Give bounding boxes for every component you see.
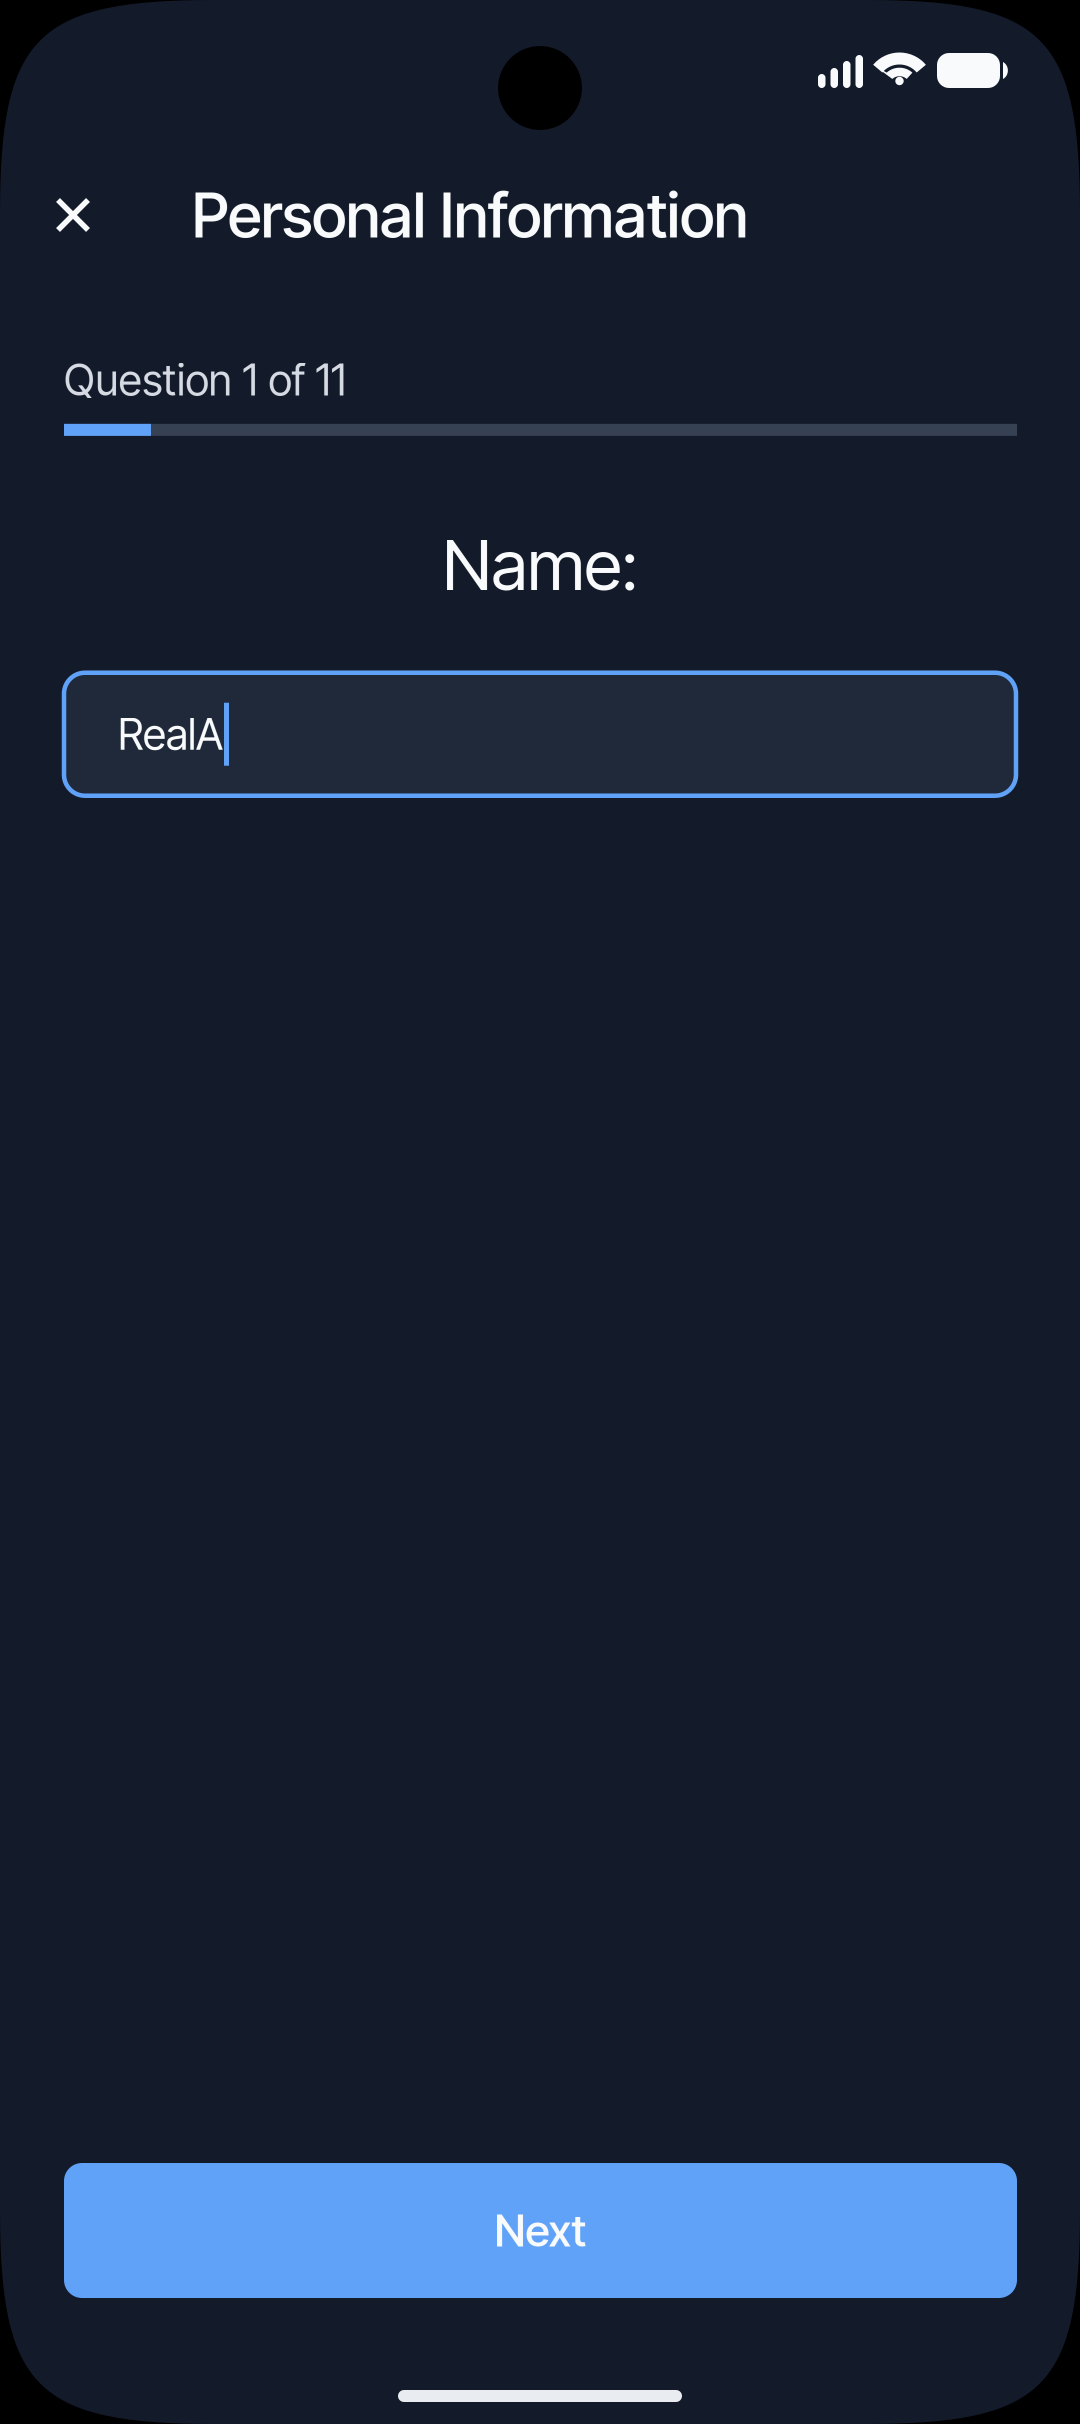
button[interactable]: Name: [64, 673, 1016, 796]
button[interactable]: Next: [64, 2163, 1017, 2298]
staticText: RealA: [118, 708, 223, 760]
staticText: Question 1 of 11: [64, 354, 346, 406]
button[interactable]: Close: [0, 178, 192, 252]
staticText: Personal Information: [192, 178, 748, 252]
staticText: Next: [494, 2204, 586, 2257]
staticText: Name:: [442, 523, 637, 607]
